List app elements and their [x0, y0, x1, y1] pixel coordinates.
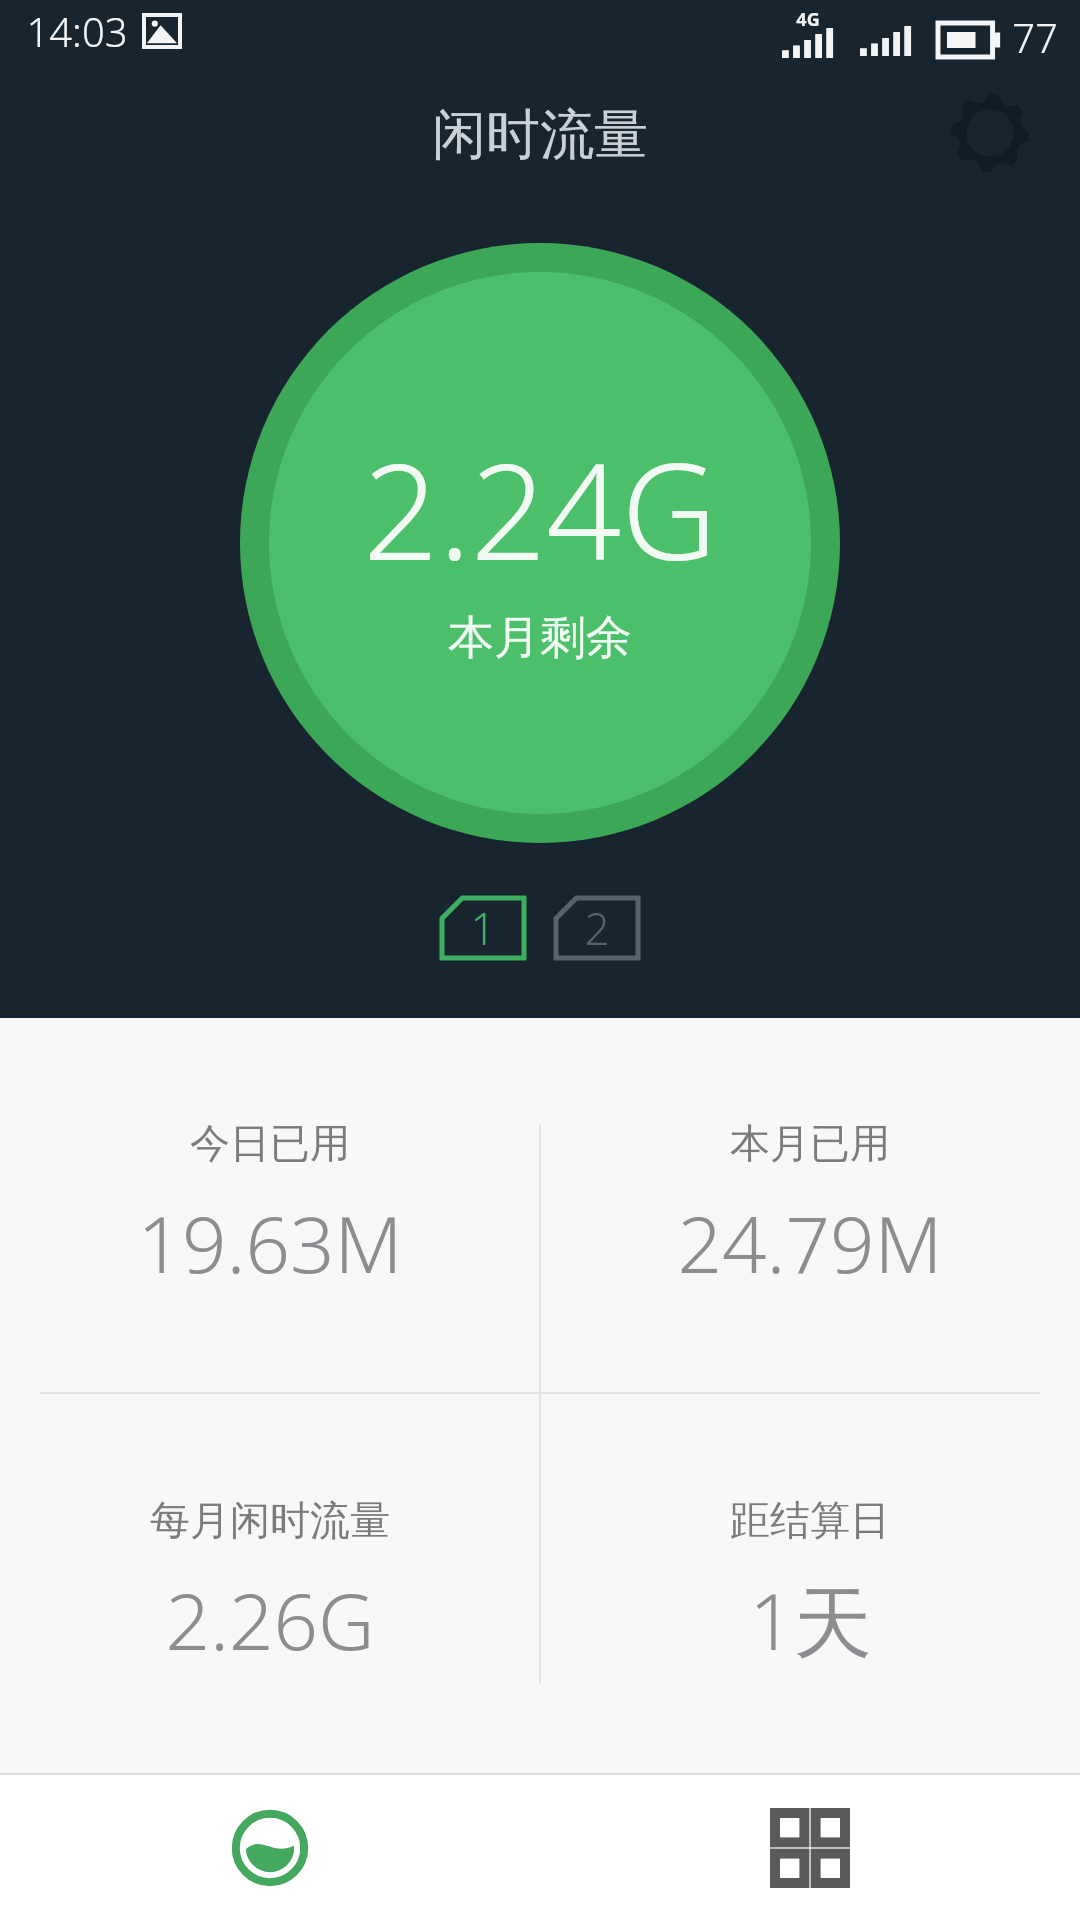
button[interactable]: 每月闲时流量 — [0, 1395, 540, 1773]
staticText: 19.63M — [137, 1190, 403, 1296]
staticText: 每月闲时流量 — [150, 1495, 390, 1545]
staticText: 距结算日 — [730, 1495, 890, 1545]
button[interactable]: 今日已用 — [0, 1018, 540, 1395]
staticText: 今日已用 — [190, 1118, 350, 1168]
staticText: 2.26G — [165, 1567, 375, 1673]
button[interactable]: 距结算日 — [540, 1395, 1080, 1773]
button[interactable]: Traffic — [0, 1775, 540, 1920]
staticText: 闲时流量 — [432, 101, 648, 169]
button[interactable]: Settings — [942, 85, 1038, 181]
staticText: 2 — [584, 898, 610, 958]
button[interactable]: 本月已用 — [540, 1018, 1080, 1395]
staticText: 14:03 — [26, 4, 128, 58]
staticText: 本月已用 — [730, 1118, 890, 1168]
button[interactable]: 2 — [554, 896, 640, 960]
button[interactable]: 1 — [440, 896, 526, 960]
staticText: 4G — [796, 7, 820, 32]
staticText: 本月剩余 — [448, 609, 632, 667]
staticText: 2.24G — [363, 419, 717, 599]
button[interactable]: Apps — [540, 1775, 1080, 1920]
staticText: 1 — [470, 898, 496, 958]
staticText: 77 — [1012, 10, 1058, 64]
staticText: 1天 — [749, 1567, 872, 1674]
button[interactable]: 2.24G — [240, 243, 840, 843]
staticText: 24.79M — [677, 1190, 943, 1296]
